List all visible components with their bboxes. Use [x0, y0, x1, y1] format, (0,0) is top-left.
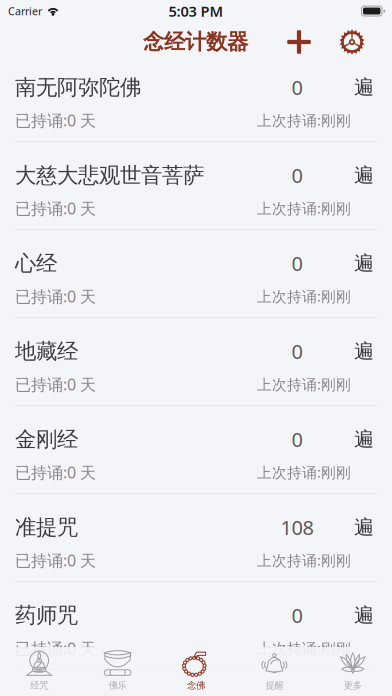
staticText: 0 [291, 162, 302, 189]
staticText: 心经 [15, 250, 57, 276]
staticText: 佛乐 [109, 680, 127, 691]
staticText: 已持诵:0 天 [15, 638, 96, 659]
staticText: 提醒 [265, 680, 283, 691]
staticText: 上次持诵:刚刚 [257, 286, 351, 306]
button[interactable]: 心经 [0, 230, 392, 318]
button[interactable]: 地藏经 [0, 318, 392, 406]
staticText: 遍 [354, 515, 374, 540]
staticText: 遍 [354, 339, 374, 364]
staticText: 准提咒 [15, 514, 78, 540]
staticText: 已持诵:0 天 [15, 550, 96, 571]
staticText: 上次持诵:刚刚 [257, 462, 351, 482]
staticText: 0 [291, 338, 302, 365]
staticText: 108 [280, 514, 313, 541]
staticText: 0 [291, 250, 302, 277]
staticText: 念佛 [187, 680, 205, 691]
staticText: 遍 [354, 427, 374, 452]
staticText: 已持诵:0 天 [15, 374, 96, 395]
staticText: 遍 [354, 75, 374, 100]
staticText: 0 [291, 602, 302, 629]
staticText: 地藏经 [15, 338, 78, 364]
staticText: Carrier [8, 4, 42, 18]
staticText: 上次持诵:刚刚 [257, 374, 351, 394]
button[interactable]: 准提咒 [0, 494, 392, 582]
button[interactable]: 金刚经 [0, 406, 392, 494]
staticText: 0 [291, 426, 302, 453]
button[interactable]: Add [281, 24, 317, 60]
staticText: 金刚经 [15, 426, 78, 452]
staticText: 南无阿弥陀佛 [15, 74, 141, 100]
button[interactable]: 药师咒 [0, 582, 392, 670]
staticText: 上次持诵:刚刚 [257, 550, 351, 570]
button[interactable]: 经咒 [0, 647, 78, 696]
staticText: 已持诵:0 天 [15, 198, 96, 219]
button[interactable]: 更多 [314, 647, 392, 696]
staticText: 念经计数器 [143, 29, 248, 55]
staticText: 大慈大悲观世音菩萨 [15, 162, 204, 188]
button[interactable]: 佛乐 [78, 647, 157, 696]
staticText: 5:03 PM [168, 1, 223, 21]
staticText: 药师咒 [15, 602, 78, 628]
button[interactable]: 提醒 [235, 647, 314, 696]
staticText: 遍 [354, 251, 374, 276]
staticText: 遍 [354, 603, 374, 628]
button[interactable]: 南无阿弥陀佛 [0, 54, 392, 142]
staticText: 上次持诵:刚刚 [257, 198, 351, 218]
staticText: 上次持诵:刚刚 [257, 110, 351, 130]
staticText: 经咒 [30, 680, 48, 691]
staticText: 已持诵:0 天 [15, 462, 96, 483]
staticText: 上次持诵:刚刚 [257, 638, 351, 658]
staticText: 0 [291, 74, 302, 101]
staticText: 遍 [354, 163, 374, 188]
button[interactable]: 念佛 [157, 647, 235, 696]
button[interactable]: 大慈大悲观世音菩萨 [0, 142, 392, 230]
staticText: 已持诵:0 天 [15, 286, 96, 307]
button[interactable]: Settings [334, 24, 370, 60]
staticText: 已持诵:0 天 [15, 110, 96, 131]
staticText: 更多 [344, 680, 362, 691]
